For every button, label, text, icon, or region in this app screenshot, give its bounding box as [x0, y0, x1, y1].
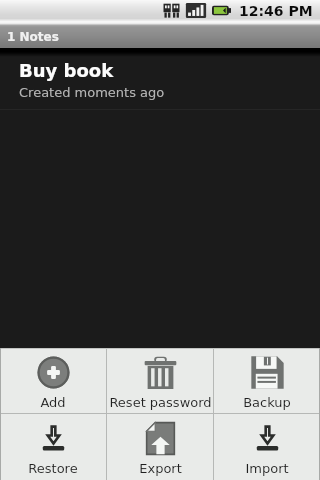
button[interactable]: Add [0, 349, 106, 413]
staticText: Restore [28, 461, 78, 476]
button[interactable]: Buy book [0, 53, 320, 110]
staticText: Created moments ago [19, 85, 165, 100]
button[interactable]: Backup [214, 349, 320, 413]
staticText: Export [139, 461, 182, 476]
staticText: Backup [243, 395, 291, 410]
button[interactable]: Export [107, 414, 213, 480]
staticText: 1 Notes [7, 30, 59, 44]
button[interactable]: Import [214, 414, 320, 480]
button[interactable]: Restore [0, 414, 106, 480]
staticText: Buy book [19, 60, 114, 81]
staticText: 12:46 PM [239, 3, 313, 19]
button[interactable]: Reset password [107, 349, 213, 413]
staticText: Add [40, 395, 66, 410]
staticText: Import [245, 461, 289, 476]
staticText: Reset password [109, 395, 212, 410]
